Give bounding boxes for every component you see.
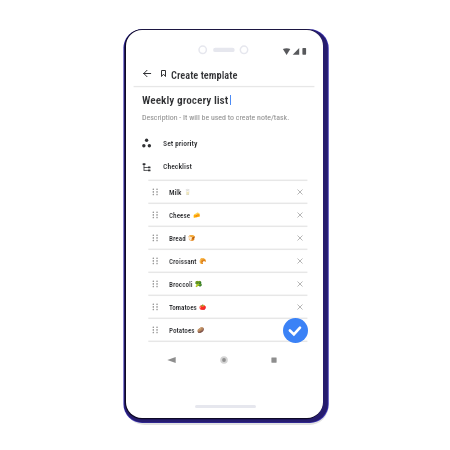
staticText: Tomatoes	[169, 303, 197, 311]
staticText: Croissant	[169, 257, 197, 265]
button[interactable]: Potatoes	[148, 319, 307, 341]
button[interactable]: Home	[216, 352, 232, 368]
staticText: 🥛	[184, 189, 192, 196]
staticText: Set priority	[163, 139, 198, 148]
staticText: 🍅	[199, 304, 207, 311]
button[interactable]: Remove item	[295, 279, 305, 289]
button[interactable]: Back	[140, 67, 153, 80]
button[interactable]: Broccoli	[148, 273, 307, 295]
staticText: Broccoli	[169, 280, 193, 288]
button[interactable]: Remove item	[295, 233, 305, 243]
staticText: 🧀	[193, 212, 201, 219]
staticText: 🥐	[199, 258, 207, 265]
button[interactable]: Remove item	[295, 302, 305, 312]
button[interactable]: Milk	[148, 181, 307, 203]
staticText: 🥦	[195, 281, 203, 288]
button[interactable]: Remove item	[295, 187, 305, 197]
staticText: Cheese	[169, 211, 191, 219]
staticText: Create template	[171, 69, 238, 81]
button[interactable]: Back	[165, 352, 181, 368]
button[interactable]: Recent apps	[266, 352, 282, 368]
staticText: 🍞	[188, 235, 196, 242]
staticText: Weekly grocery list	[142, 94, 229, 107]
button[interactable]: Confirm	[283, 318, 308, 343]
button[interactable]: Remove item	[295, 210, 305, 220]
staticText: Milk	[169, 188, 182, 196]
staticText: Checklist	[163, 162, 192, 171]
button[interactable]: Cheese	[148, 204, 307, 226]
staticText: Bread	[169, 234, 186, 242]
button[interactable]: Bread	[148, 227, 307, 249]
button[interactable]: Checklist	[126, 156, 323, 177]
staticText: 🥔	[197, 327, 205, 334]
staticText: Potatoes	[169, 326, 195, 334]
staticText: Description - It will be used to create …	[142, 113, 290, 122]
button[interactable]: Remove item	[295, 256, 305, 266]
button[interactable]: Tomatoes	[148, 296, 307, 318]
button[interactable]: Croissant	[148, 250, 307, 272]
button[interactable]: Set priority	[126, 133, 323, 154]
